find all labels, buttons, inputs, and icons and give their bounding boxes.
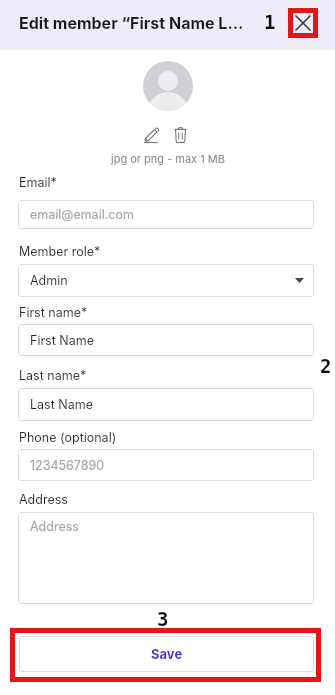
- button[interactable]: 1234567890: [18, 449, 314, 481]
- staticText: Email*: [19, 175, 57, 190]
- staticText: First name*: [19, 305, 88, 320]
- staticText: Last Name: [30, 397, 93, 412]
- staticText: Last name*: [19, 368, 87, 383]
- staticText: Admin: [30, 273, 68, 288]
- button[interactable]: First Name: [18, 324, 314, 356]
- staticText: jpg or png - max 1 MB: [111, 152, 225, 165]
- staticText: Member role*: [19, 244, 101, 259]
- staticText: Edit member “First Name L...: [19, 13, 244, 32]
- staticText: 1: [264, 11, 276, 33]
- staticText: Address: [30, 519, 79, 534]
- button[interactable]: Address: [18, 512, 314, 604]
- staticText: 3: [157, 608, 169, 630]
- button[interactable]: [174, 127, 187, 143]
- staticText: 2: [320, 355, 332, 377]
- button[interactable]: Admin: [18, 264, 314, 297]
- staticText: email@email.com: [30, 207, 134, 222]
- staticText: 1234567890: [30, 458, 105, 473]
- staticText: Phone (optional): [19, 430, 117, 445]
- staticText: Address: [19, 492, 68, 507]
- staticText: Save: [151, 646, 183, 662]
- button[interactable]: [144, 126, 161, 143]
- button[interactable]: Last Name: [18, 388, 314, 421]
- staticText: First Name: [30, 333, 94, 348]
- button[interactable]: [288, 8, 318, 38]
- button[interactable]: Save: [19, 636, 314, 672]
- button[interactable]: email@email.com: [18, 200, 314, 229]
